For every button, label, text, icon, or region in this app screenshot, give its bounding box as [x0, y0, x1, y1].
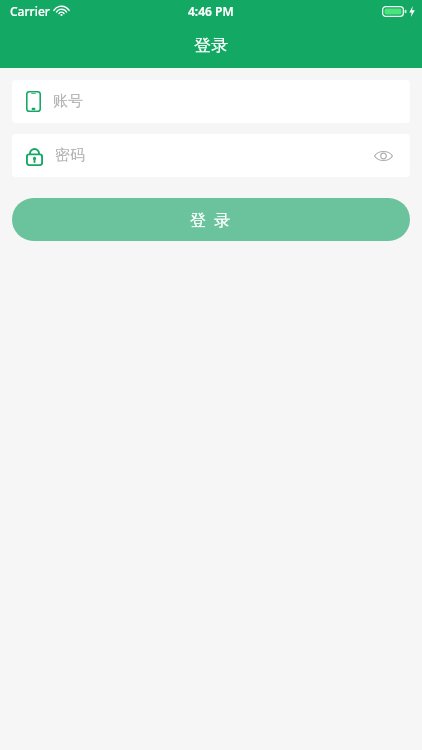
staticText: 4:46 PM: [188, 3, 234, 19]
staticText: 登 录: [190, 209, 233, 231]
staticText: 账号: [53, 92, 83, 111]
button[interactable]: 账号: [12, 80, 410, 123]
staticText: 密码: [55, 146, 85, 165]
staticText: Carrier: [10, 3, 50, 19]
button[interactable]: 登 录: [12, 198, 410, 241]
button[interactable]: 密码: [12, 134, 410, 177]
button[interactable]: Show password: [370, 143, 396, 169]
staticText: 登录: [194, 35, 228, 56]
